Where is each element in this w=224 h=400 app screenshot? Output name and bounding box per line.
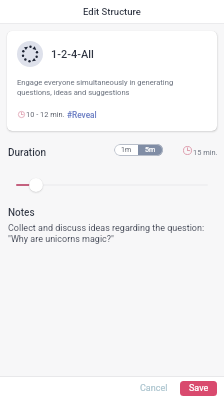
staticText: Cancel (140, 383, 168, 394)
button[interactable]: 1-2-4-All (7, 31, 217, 131)
button[interactable]: 5m (138, 144, 163, 156)
staticText: 10 - 12 min. (26, 110, 65, 119)
staticText: Collect and discuss ideas regarding the … (8, 223, 205, 245)
staticText: Save (189, 383, 209, 394)
staticText: 1m (121, 146, 132, 154)
staticText: 1-2-4-All (51, 48, 94, 61)
staticText: 5m (145, 146, 156, 154)
staticText: 15 min. (193, 148, 218, 157)
staticText: Engage everyone simultaneously in genera… (17, 78, 174, 97)
button[interactable]: 1m (114, 144, 138, 156)
staticText: #Reveal (67, 110, 97, 120)
button[interactable]: Duration slider (29, 178, 43, 192)
button[interactable]: Cancel (134, 379, 174, 398)
staticText: Duration (8, 147, 46, 159)
button[interactable]: Save (180, 381, 217, 396)
staticText: Notes (8, 207, 35, 219)
staticText: Edit Structure (83, 6, 141, 17)
